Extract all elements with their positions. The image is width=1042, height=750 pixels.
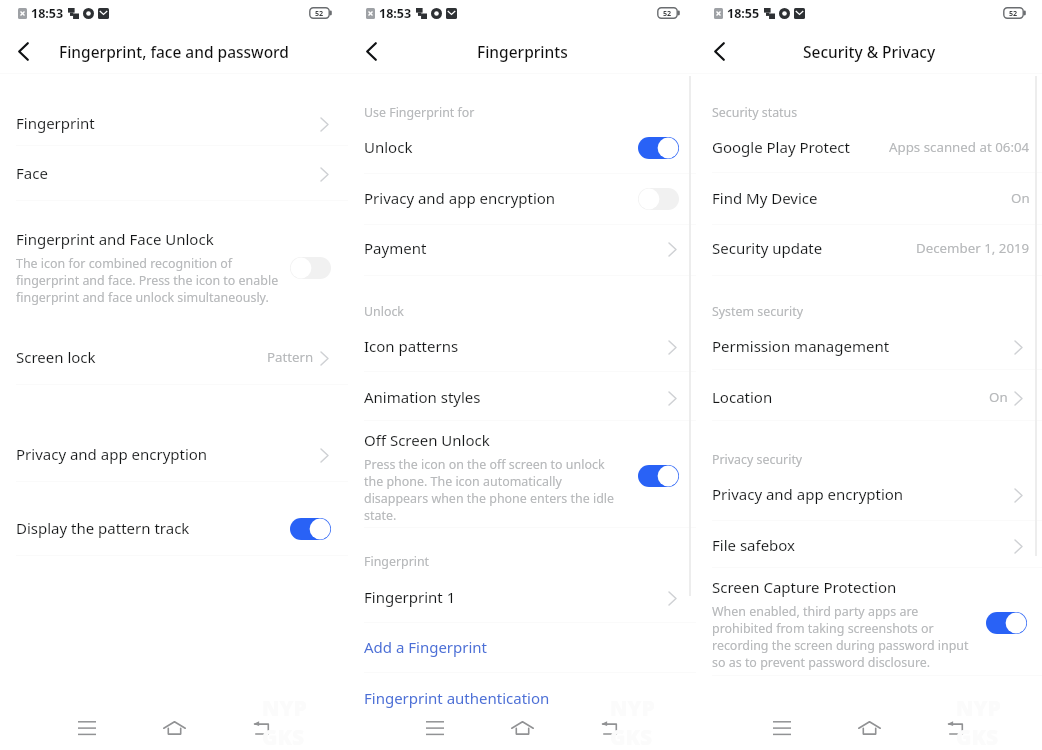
staticText: Location: [712, 387, 773, 407]
staticText: Display the pattern track: [16, 518, 190, 538]
staticText: Payment: [364, 238, 427, 258]
button[interactable]: Off Screen Unlock: [348, 431, 696, 526]
button[interactable]: Off: [290, 257, 331, 279]
staticText: December 1, 2019: [916, 239, 1030, 257]
staticText: 18:53: [31, 5, 64, 22]
button[interactable]: File safebox: [696, 521, 1042, 571]
button[interactable]: Icon patterns: [348, 322, 696, 372]
button[interactable]: Privacy and app encryption: [0, 430, 348, 480]
staticText: Fingerprint and Face Unlock: [16, 229, 214, 249]
button[interactable]: Security update: [696, 224, 1042, 274]
button[interactable]: Display the pattern track: [0, 504, 348, 554]
staticText: Security update: [712, 238, 823, 258]
button[interactable]: Recent apps: [413, 706, 457, 750]
button[interactable]: Privacy and app encryption: [348, 174, 696, 224]
button[interactable]: Google Play Protect: [696, 123, 1042, 173]
staticText: Security status: [712, 104, 798, 121]
button[interactable]: Privacy and app encryption: [696, 470, 1042, 520]
staticText: When enabled, third party apps are prohi…: [712, 603, 976, 671]
staticText: 52: [1009, 8, 1018, 18]
staticText: Icon patterns: [364, 336, 459, 356]
button[interactable]: Unlock: [348, 123, 696, 173]
button[interactable]: Recent apps: [760, 706, 804, 750]
staticText: Apps scanned at 06:04: [889, 138, 1030, 156]
button[interactable]: On: [638, 137, 679, 159]
button[interactable]: On: [290, 518, 331, 540]
staticText: Fingerprint: [364, 553, 430, 570]
button[interactable]: Screen lock: [0, 333, 348, 383]
staticText: Security & Privacy: [803, 41, 936, 62]
button[interactable]: Back: [4, 32, 42, 70]
staticText: Off Screen Unlock: [364, 430, 490, 450]
staticText: Screen Capture Protection: [712, 577, 897, 597]
button[interactable]: Permission management: [696, 322, 1042, 372]
staticText: 52: [315, 8, 324, 18]
staticText: Fingerprint: [16, 113, 95, 133]
staticText: System security: [712, 303, 803, 320]
staticText: Pattern: [267, 348, 314, 366]
staticText: Google Play Protect: [712, 137, 850, 157]
staticText: Privacy security: [712, 451, 803, 468]
button[interactable]: Off: [638, 188, 679, 210]
button[interactable]: Find My Device: [696, 174, 1042, 224]
staticText: Add a Fingerprint: [364, 637, 488, 657]
staticText: Permission management: [712, 336, 890, 356]
button[interactable]: Location: [696, 373, 1042, 423]
button[interactable]: Back: [700, 32, 738, 70]
staticText: GKS: [262, 723, 305, 750]
staticText: Screen lock: [16, 347, 96, 367]
staticText: Animation styles: [364, 387, 481, 407]
staticText: Privacy and app encryption: [16, 444, 208, 464]
staticText: Unlock: [364, 303, 404, 320]
button[interactable]: Face: [0, 149, 348, 199]
button[interactable]: Back: [352, 32, 390, 70]
staticText: Fingerprints: [477, 41, 568, 62]
button[interactable]: Back: [239, 706, 283, 750]
button[interactable]: Fingerprint and Face Unlock: [0, 230, 348, 320]
staticText: 18:55: [727, 5, 760, 22]
button[interactable]: Recent apps: [65, 706, 109, 750]
staticText: On: [1011, 189, 1030, 207]
button[interactable]: Fingerprint 1: [348, 573, 696, 623]
staticText: Unlock: [364, 137, 413, 157]
staticText: GKS: [956, 723, 999, 750]
staticText: Privacy and app encryption: [364, 188, 556, 208]
button[interactable]: Back: [933, 706, 977, 750]
button[interactable]: Fingerprint authentication: [348, 674, 696, 724]
button[interactable]: On: [986, 612, 1027, 634]
button[interactable]: Fingerprint: [0, 99, 348, 149]
staticText: 52: [663, 8, 672, 18]
button[interactable]: Payment: [348, 224, 696, 274]
button[interactable]: On: [638, 465, 679, 487]
staticText: Privacy and app encryption: [712, 484, 904, 504]
button[interactable]: Home: [847, 706, 891, 750]
staticText: Face: [16, 163, 48, 183]
staticText: GKS: [610, 723, 653, 750]
staticText: Fingerprint, face and password: [59, 41, 289, 62]
staticText: Fingerprint authentication: [364, 688, 550, 708]
button[interactable]: Back: [587, 706, 631, 750]
button[interactable]: Home: [500, 706, 544, 750]
staticText: Press the icon on the off screen to unlo…: [364, 456, 620, 524]
staticText: The icon for combined recognition of fin…: [16, 255, 288, 306]
button[interactable]: Home: [152, 706, 196, 750]
staticText: Find My Device: [712, 188, 818, 208]
staticText: On: [989, 388, 1008, 406]
button[interactable]: Screen Capture Protection: [696, 578, 1042, 673]
button[interactable]: Animation styles: [348, 373, 696, 423]
button[interactable]: Add a Fingerprint: [348, 623, 696, 673]
staticText: Fingerprint 1: [364, 587, 456, 607]
staticText: File safebox: [712, 535, 796, 555]
staticText: Use Fingerprint for: [364, 104, 475, 121]
staticText: 18:53: [379, 5, 412, 22]
